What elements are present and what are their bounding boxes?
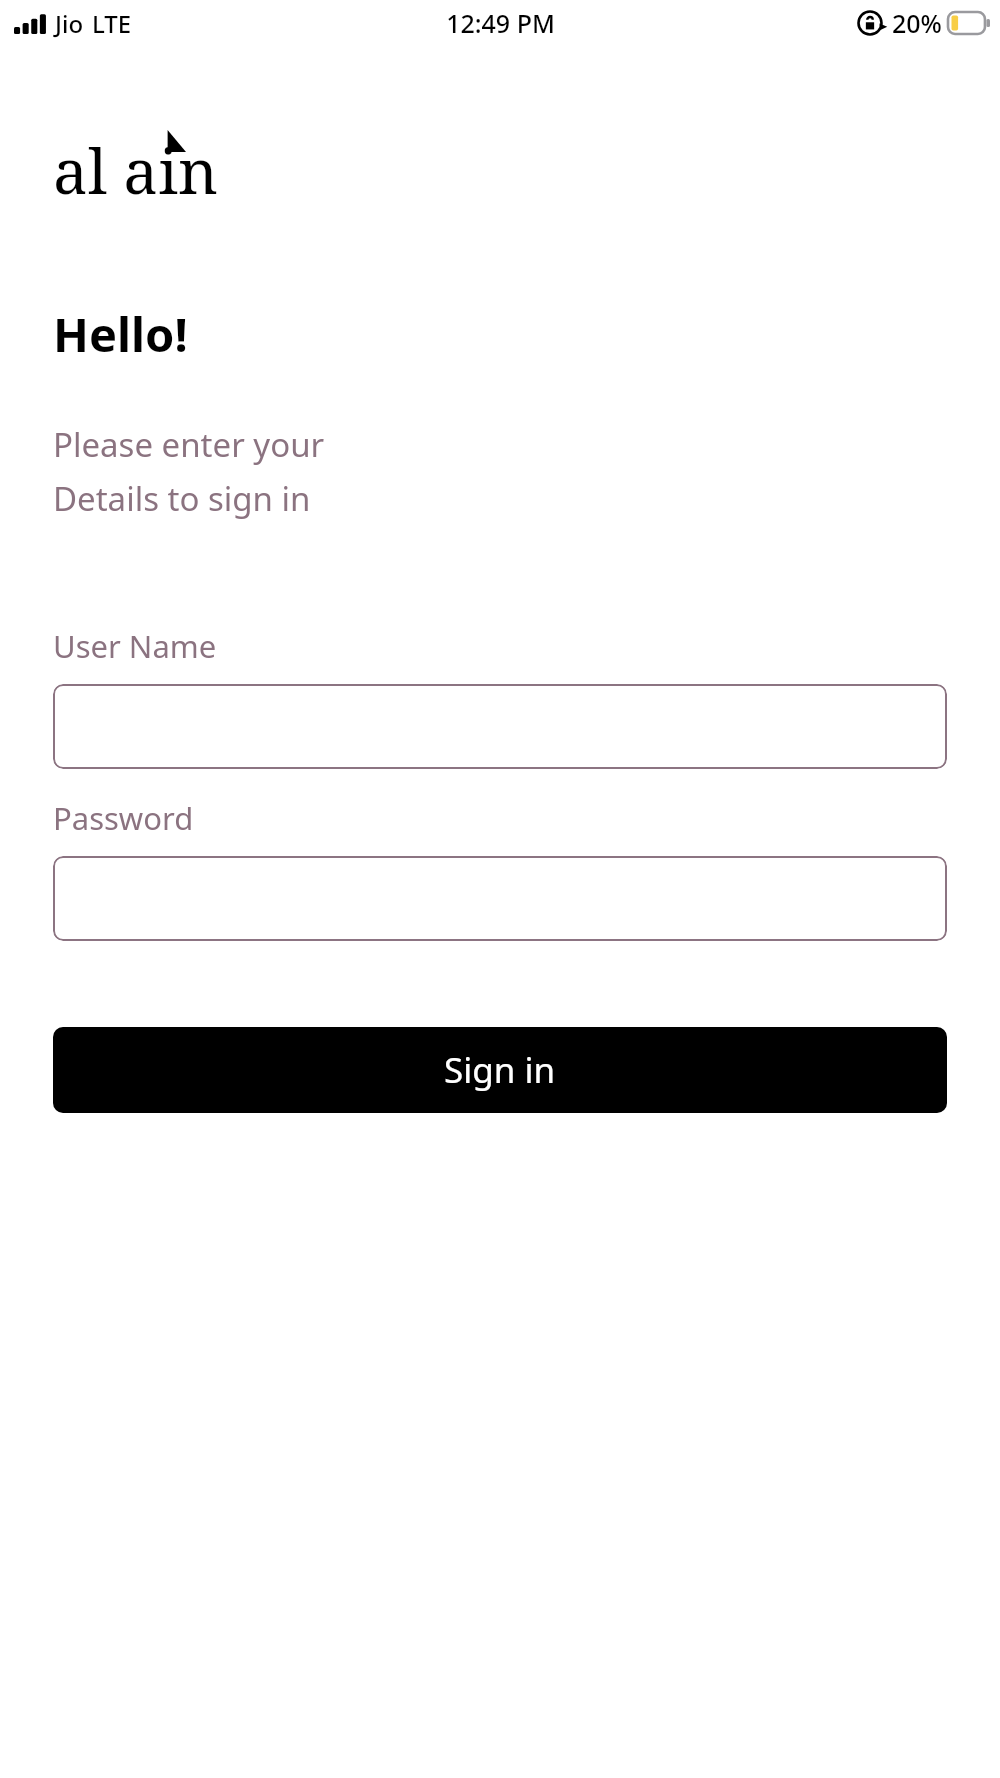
staticText: LTE [92, 7, 132, 40]
staticText: Hello! [53, 302, 188, 366]
staticText: Jio [55, 7, 84, 40]
staticText: Sign in [444, 1046, 556, 1094]
button[interactable]: User Name input [53, 684, 947, 769]
button[interactable]: Password input [53, 856, 947, 941]
staticText: 12:49 PM [446, 6, 555, 40]
button[interactable]: Sign in [53, 1027, 947, 1113]
staticText: al ain [53, 128, 218, 206]
staticText: 20% [892, 6, 942, 40]
staticText: Please enter your Details to sign in [53, 422, 325, 521]
staticText: Password [53, 797, 194, 839]
staticText: User Name [53, 625, 217, 667]
